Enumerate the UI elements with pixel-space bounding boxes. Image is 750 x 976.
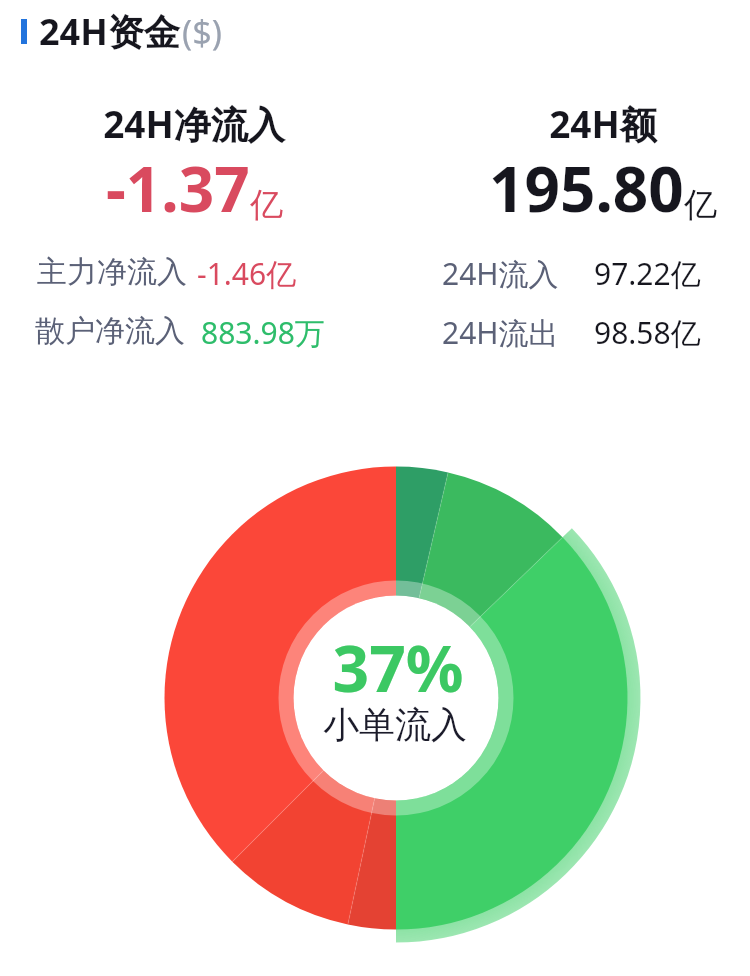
- staticText: 24H资金: [39, 7, 180, 56]
- staticText: 24H流出: [442, 312, 559, 353]
- staticText: 883.98万: [201, 312, 325, 353]
- staticText: 散户净流入: [35, 312, 185, 350]
- staticText: 195.80: [489, 146, 684, 230]
- staticText: -1.37: [106, 146, 250, 230]
- staticText: 37%: [248, 624, 548, 711]
- staticText: ($): [182, 9, 222, 55]
- staticText: 24H流入: [442, 253, 559, 294]
- staticText: 主力净流入: [37, 253, 187, 291]
- staticText: 97.22亿: [594, 253, 701, 294]
- staticText: 98.58亿: [594, 312, 701, 353]
- staticText: -1.46亿: [197, 253, 297, 294]
- staticText: 24H净流入: [103, 98, 285, 149]
- staticText: 亿: [684, 184, 717, 226]
- staticText: 24H额: [549, 98, 657, 149]
- staticText: 亿: [250, 184, 283, 226]
- staticText: 小单流入: [245, 702, 545, 747]
